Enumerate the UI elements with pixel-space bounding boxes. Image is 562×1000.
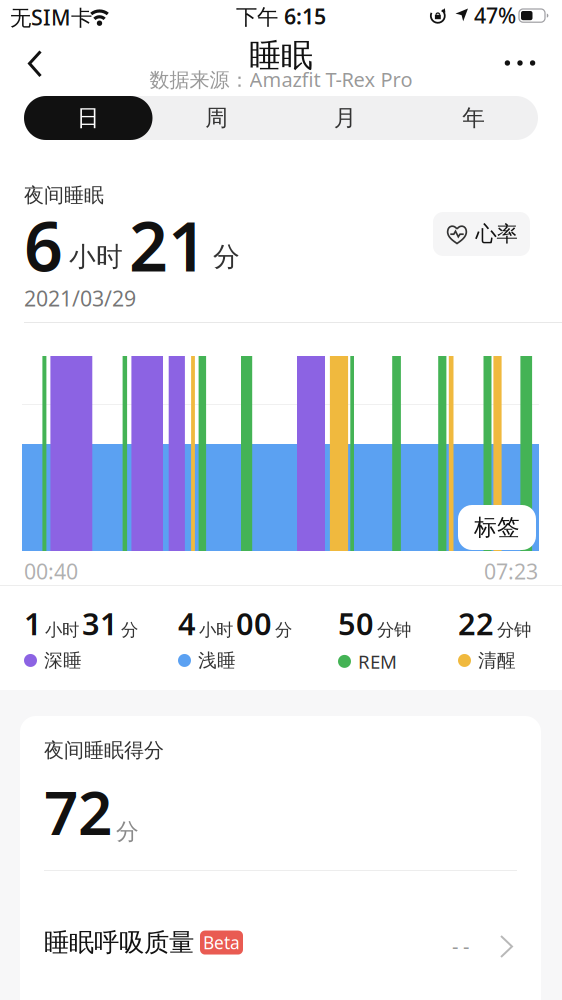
- staticText: 月: [334, 104, 357, 132]
- staticText: 下午 6:15: [236, 2, 326, 30]
- staticText: 标签: [474, 514, 520, 541]
- button[interactable]: Back: [14, 42, 58, 82]
- staticText: 分钟: [377, 619, 411, 641]
- staticText: 心率: [475, 221, 517, 247]
- staticText: 年: [462, 104, 485, 132]
- staticText: 清醒: [478, 649, 516, 672]
- staticText: 31: [82, 603, 118, 644]
- staticText: - -: [452, 933, 469, 960]
- button[interactable]: 睡眠呼吸质量: [20, 914, 541, 984]
- staticText: 72: [44, 772, 112, 852]
- staticText: 小时: [69, 240, 123, 273]
- staticText: 分钟: [497, 619, 531, 641]
- staticText: 07:23: [484, 557, 538, 585]
- staticText: 50: [338, 603, 374, 644]
- staticText: 21: [129, 200, 207, 290]
- button[interactable]: 月: [281, 96, 409, 140]
- button[interactable]: 周: [152, 96, 281, 140]
- staticText: 睡眠呼吸质量: [44, 927, 194, 958]
- staticText: 数据来源：Amazfit T-Rex Pro: [149, 66, 412, 93]
- button[interactable]: 日: [24, 96, 152, 140]
- staticText: REM: [358, 649, 397, 674]
- staticText: 分: [275, 619, 292, 641]
- button[interactable]: 心率: [433, 212, 530, 256]
- staticText: 2021/03/29: [24, 284, 136, 312]
- button[interactable]: 标签: [458, 505, 536, 550]
- staticText: 睡眠: [249, 36, 313, 75]
- staticText: 4: [178, 603, 196, 644]
- staticText: 小时: [45, 619, 79, 641]
- button[interactable]: 年: [409, 96, 538, 140]
- staticText: 分: [121, 619, 138, 641]
- staticText: 浅睡: [198, 649, 236, 672]
- staticText: 6: [24, 200, 63, 290]
- button[interactable]: More: [498, 41, 542, 85]
- staticText: 分: [213, 240, 240, 273]
- staticText: 日: [77, 104, 100, 132]
- staticText: 夜间睡眠: [24, 183, 104, 208]
- staticText: 夜间睡眠得分: [44, 738, 164, 763]
- staticText: 分: [116, 818, 139, 846]
- staticText: 1: [24, 603, 42, 644]
- staticText: 周: [205, 104, 228, 132]
- staticText: 47%: [474, 1, 516, 29]
- staticText: 22: [458, 603, 494, 644]
- staticText: 00: [236, 603, 272, 644]
- staticText: 无SIM卡: [10, 3, 92, 31]
- staticText: 00:40: [24, 557, 78, 585]
- staticText: 小时: [199, 619, 233, 641]
- staticText: 深睡: [44, 649, 82, 672]
- staticText: Beta: [203, 931, 240, 954]
